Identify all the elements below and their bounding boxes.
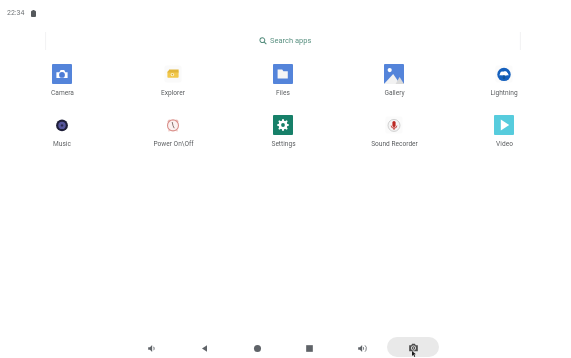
staticText: Explorer xyxy=(161,89,185,97)
staticText: Settings xyxy=(271,140,296,148)
button[interactable]: Explorer xyxy=(123,64,223,97)
button[interactable]: Sound Recorder xyxy=(344,115,444,148)
button[interactable]: Camera xyxy=(12,64,112,97)
button[interactable]: Home xyxy=(247,338,267,358)
button[interactable]: Recents xyxy=(299,338,319,358)
staticText: Sound Recorder xyxy=(371,140,418,148)
staticText: Video xyxy=(496,140,513,148)
button[interactable]: Lightning xyxy=(454,64,554,97)
staticText: Camera xyxy=(51,89,74,97)
button[interactable]: Volume down xyxy=(142,338,162,358)
button[interactable]: Settings xyxy=(233,115,333,148)
button[interactable]: Gallery xyxy=(344,64,444,97)
staticText: Files xyxy=(276,89,290,97)
button[interactable]: Screenshot xyxy=(387,337,439,357)
staticText: Lightning xyxy=(490,89,518,97)
staticText: Music xyxy=(53,140,71,148)
staticText: Search apps xyxy=(270,36,312,45)
staticText: 22:34 xyxy=(7,9,25,17)
button[interactable]: Volume up xyxy=(352,338,372,358)
button[interactable]: Power On\Off xyxy=(123,115,223,148)
button[interactable]: Video xyxy=(454,115,554,148)
staticText: Gallery xyxy=(384,89,405,97)
button[interactable]: Files xyxy=(233,64,333,97)
button[interactable]: Music xyxy=(12,115,112,148)
button[interactable]: Back xyxy=(194,338,214,358)
button[interactable]: Search apps xyxy=(45,30,521,51)
staticText: Power On\Off xyxy=(153,140,194,148)
